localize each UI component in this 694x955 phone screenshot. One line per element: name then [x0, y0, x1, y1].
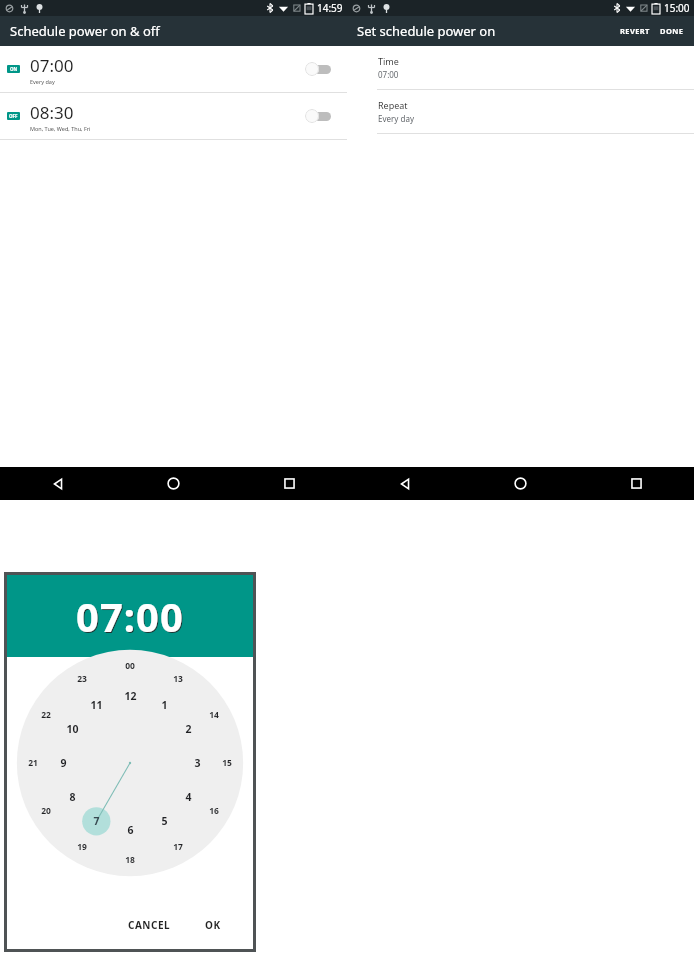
- staticText: 7: [93, 814, 100, 828]
- staticText: 23: [77, 673, 87, 685]
- staticText: 17: [173, 841, 183, 853]
- button[interactable]: Repeat: [347, 90, 694, 133]
- staticText: 5: [161, 814, 168, 828]
- staticText: 1: [161, 698, 168, 712]
- button[interactable]: Toggle alarm: [305, 59, 333, 79]
- staticText: Time: [378, 55, 399, 67]
- staticText: Mon, Tue, Wed, Thu, Fri: [30, 125, 91, 132]
- button[interactable]: OFF: [0, 93, 347, 139]
- button[interactable]: DONE: [655, 22, 689, 40]
- staticText: 07:00: [77, 590, 185, 644]
- staticText: DONE: [660, 26, 684, 36]
- staticText: 14: [209, 709, 219, 721]
- staticText: 8: [69, 790, 76, 804]
- staticText: 07:00: [378, 69, 399, 80]
- staticText: 15: [222, 757, 232, 769]
- button[interactable]: Home: [462, 467, 578, 500]
- staticText: 07:00: [76, 589, 184, 643]
- staticText: 19: [77, 841, 87, 853]
- staticText: 16: [209, 805, 219, 817]
- button[interactable]: Toggle alarm: [305, 106, 333, 126]
- staticText: Set schedule power on: [357, 22, 496, 40]
- staticText: 11: [90, 698, 103, 712]
- button[interactable]: CANCEL: [118, 912, 181, 938]
- staticText: 18: [125, 854, 135, 866]
- staticText: 08:30: [30, 101, 74, 124]
- staticText: 3: [194, 756, 201, 770]
- button[interactable]: REVERT: [615, 22, 655, 40]
- staticText: 14:59: [317, 1, 343, 15]
- button[interactable]: Back: [347, 467, 462, 500]
- staticText: OK: [205, 918, 221, 932]
- staticText: 07:00: [30, 54, 74, 77]
- staticText: Schedule power on & off: [10, 22, 160, 40]
- button[interactable]: Home: [115, 467, 231, 500]
- button[interactable]: ON: [0, 46, 347, 92]
- staticText: 10: [66, 722, 79, 736]
- button[interactable]: Back: [0, 467, 115, 500]
- staticText: 6: [127, 823, 134, 837]
- staticText: CANCEL: [128, 918, 171, 932]
- staticText: Repeat: [378, 99, 408, 111]
- staticText: 21: [28, 757, 38, 769]
- staticText: REVERT: [620, 26, 650, 36]
- staticText: Every day: [378, 113, 414, 124]
- staticText: 00: [125, 660, 135, 672]
- staticText: 2: [185, 722, 192, 736]
- staticText: ON: [10, 66, 18, 72]
- staticText: Every day: [30, 78, 55, 85]
- staticText: 12: [124, 689, 137, 703]
- staticText: 20: [41, 805, 51, 817]
- staticText: OFF: [9, 113, 18, 119]
- button[interactable]: Time: [347, 46, 694, 89]
- staticText: 13: [173, 673, 183, 685]
- staticText: 22: [41, 709, 51, 721]
- button[interactable]: Recents: [231, 467, 347, 500]
- staticText: 9: [60, 756, 67, 770]
- button[interactable]: Recents: [578, 467, 694, 500]
- staticText: 15:00: [664, 1, 690, 15]
- button[interactable]: OK: [195, 912, 231, 938]
- staticText: 4: [185, 790, 192, 804]
